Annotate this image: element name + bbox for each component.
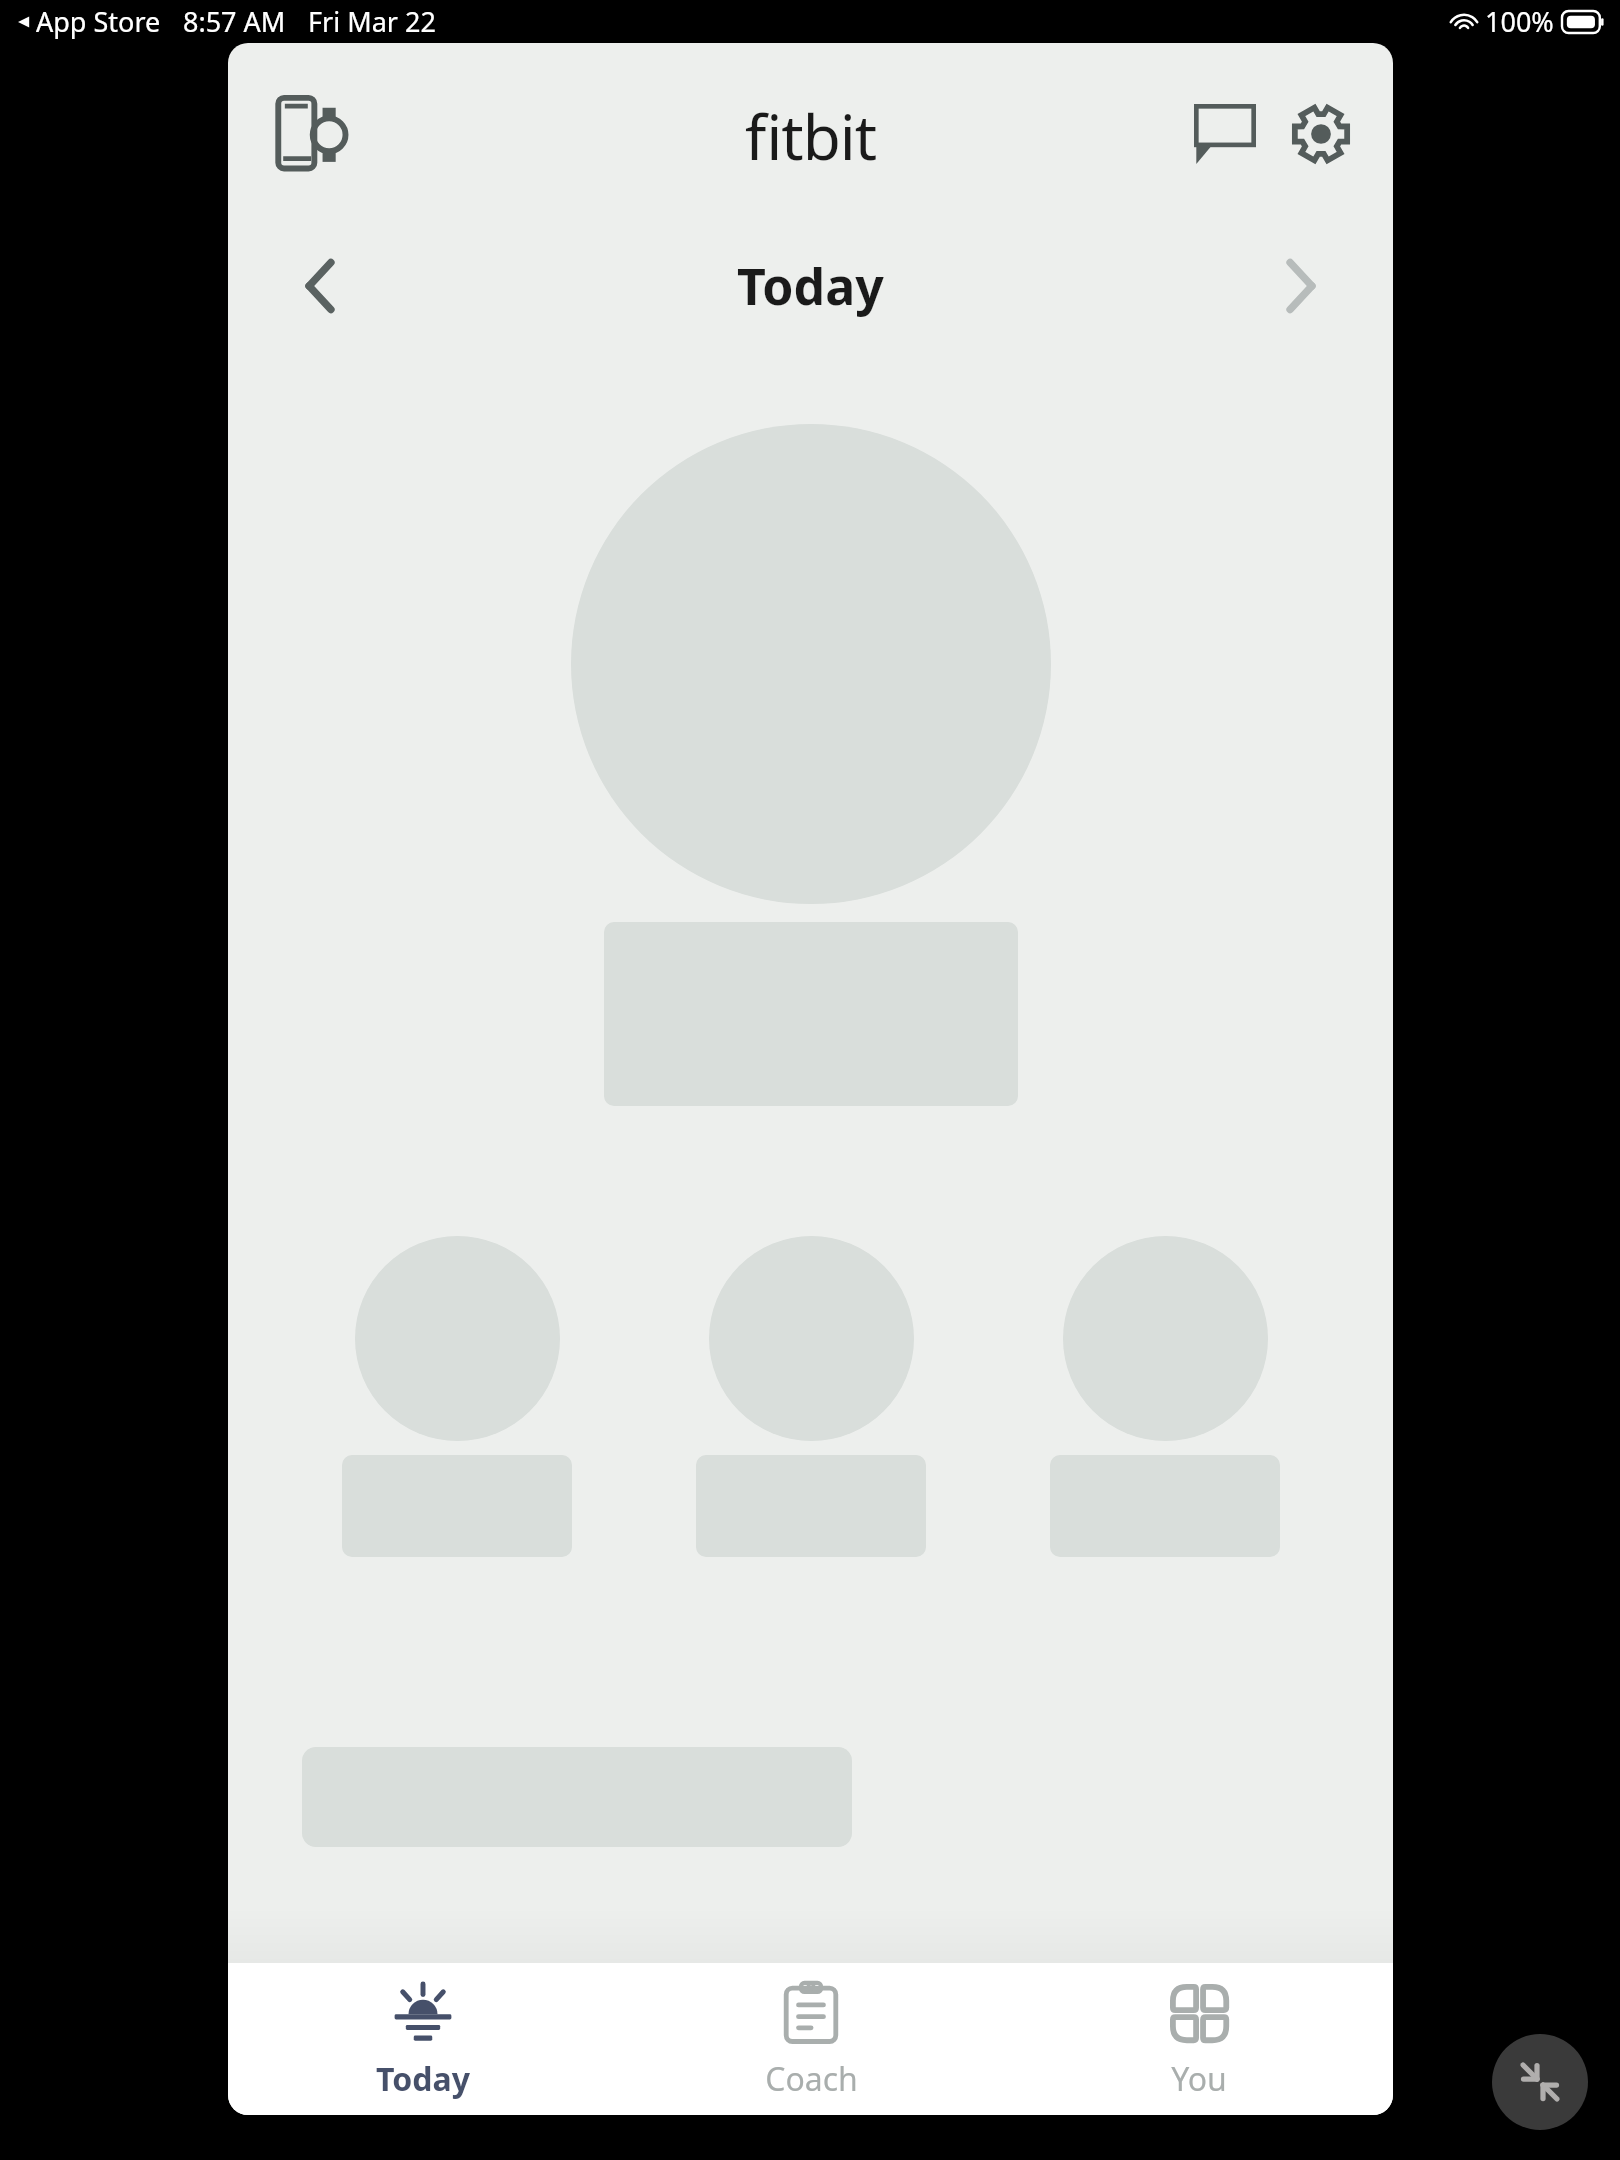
button[interactable]: Coach — [617, 1963, 1005, 2101]
staticText: fitbit — [745, 94, 877, 178]
button[interactable]: Devices — [264, 82, 368, 186]
staticText: Today — [376, 2057, 470, 2101]
staticText: You — [1171, 2057, 1227, 2101]
button[interactable]: Today — [228, 1963, 617, 2101]
button[interactable]: Next day — [1253, 238, 1349, 334]
button[interactable]: Today — [737, 252, 884, 320]
button[interactable]: Previous day — [272, 238, 368, 334]
button[interactable]: Messages — [1177, 86, 1273, 182]
staticText: Coach — [765, 2057, 858, 2101]
button[interactable]: Settings — [1273, 86, 1369, 182]
staticText: 8:57 AM — [183, 3, 286, 40]
staticText: Fri Mar 22 — [308, 3, 436, 40]
button[interactable]: Collapse — [1492, 2034, 1588, 2130]
button[interactable]: You — [1005, 1963, 1393, 2101]
staticText: App Store — [36, 3, 161, 40]
staticText: 100% — [1485, 3, 1554, 40]
